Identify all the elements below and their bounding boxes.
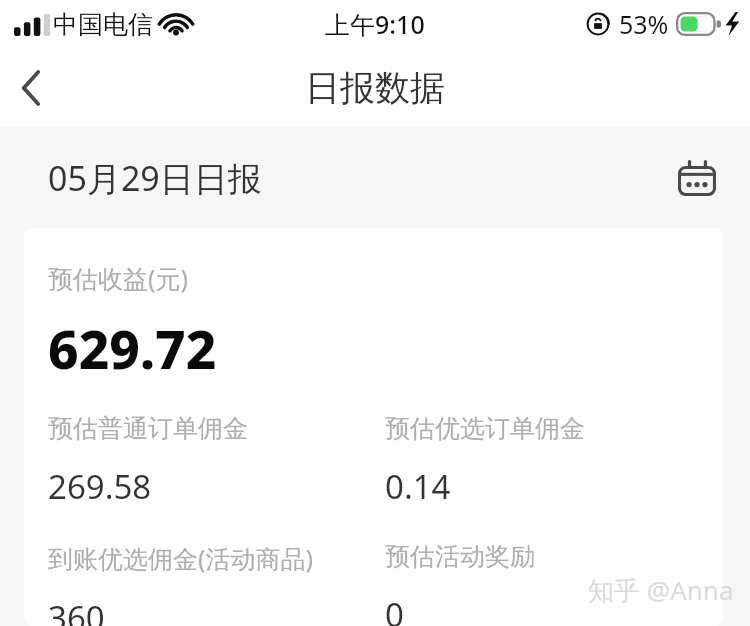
staticText: 0 (385, 592, 404, 626)
staticText: 上午9:10 (325, 7, 425, 41)
staticText: 中国电信 (53, 9, 153, 40)
staticText: 到账优选佣金(活动商品) (48, 541, 314, 575)
staticText: 05月29日日报 (48, 155, 262, 201)
staticText: 360 (48, 595, 105, 626)
staticText: 629.72 (48, 312, 217, 384)
staticText: 知乎 @Anna (588, 572, 734, 608)
button[interactable]: Back (0, 57, 62, 119)
staticText: 269.58 (48, 464, 152, 509)
staticText: 53% (619, 7, 669, 41)
button[interactable]: Pick date (671, 152, 723, 204)
staticText: 预估收益(元) (48, 261, 189, 295)
staticText: 0.14 (385, 464, 451, 509)
staticText: 预估优选订单佣金 (385, 413, 585, 444)
staticText: 预估活动奖励 (385, 541, 535, 572)
staticText: 日报数据 (305, 66, 445, 110)
staticText: 预估普通订单佣金 (48, 413, 248, 444)
